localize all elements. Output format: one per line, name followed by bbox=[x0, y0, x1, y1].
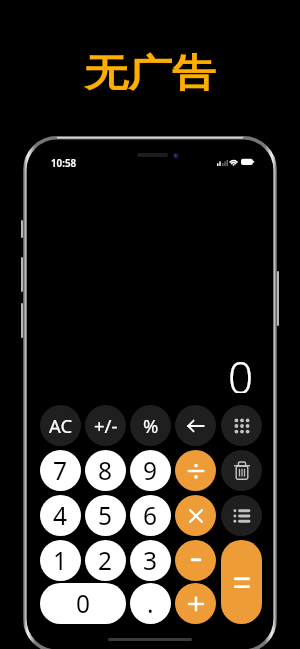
button[interactable]: AC bbox=[40, 405, 81, 446]
staticText: 6 bbox=[143, 499, 158, 532]
button[interactable]: Minus bbox=[175, 540, 216, 581]
staticText: +/- bbox=[94, 413, 118, 438]
staticText: 9 bbox=[143, 454, 158, 487]
staticText: 2 bbox=[98, 544, 113, 577]
staticText: 5 bbox=[98, 499, 113, 532]
button[interactable]: Plus bbox=[175, 583, 216, 624]
staticText: 7 bbox=[53, 454, 68, 487]
button[interactable]: +/- bbox=[85, 405, 126, 446]
button[interactable]: 4 bbox=[40, 495, 81, 536]
button[interactable]: Delete bbox=[221, 450, 262, 491]
button[interactable]: 5 bbox=[85, 495, 126, 536]
button[interactable]: Backspace bbox=[175, 405, 216, 446]
staticText: AC bbox=[49, 413, 73, 438]
staticText: 8 bbox=[98, 454, 113, 487]
staticText: 3 bbox=[143, 544, 158, 577]
staticText: 4 bbox=[53, 499, 68, 532]
staticText: 0 bbox=[228, 347, 254, 393]
staticText: 无广告 bbox=[84, 50, 216, 97]
button[interactable]: Multiply bbox=[175, 495, 216, 536]
button[interactable]: % bbox=[130, 405, 171, 446]
button[interactable]: Equals bbox=[221, 540, 262, 624]
staticText: . bbox=[147, 587, 154, 620]
button[interactable]: 9 bbox=[130, 450, 171, 491]
button[interactable]: 1 bbox=[40, 540, 81, 581]
button[interactable]: Keypad bbox=[221, 405, 262, 446]
button[interactable]: Divide bbox=[175, 450, 216, 491]
button[interactable]: History bbox=[221, 495, 262, 536]
button[interactable]: . bbox=[130, 583, 171, 624]
staticText: 1 bbox=[53, 544, 68, 577]
staticText: 0 bbox=[76, 587, 91, 620]
staticText: % bbox=[143, 413, 159, 438]
button[interactable]: 7 bbox=[40, 450, 81, 491]
button[interactable]: 0 bbox=[40, 583, 126, 624]
staticText: 10:58 bbox=[51, 157, 77, 170]
button[interactable]: 2 bbox=[85, 540, 126, 581]
button[interactable]: 6 bbox=[130, 495, 171, 536]
button[interactable]: 8 bbox=[85, 450, 126, 491]
button[interactable]: 3 bbox=[130, 540, 171, 581]
